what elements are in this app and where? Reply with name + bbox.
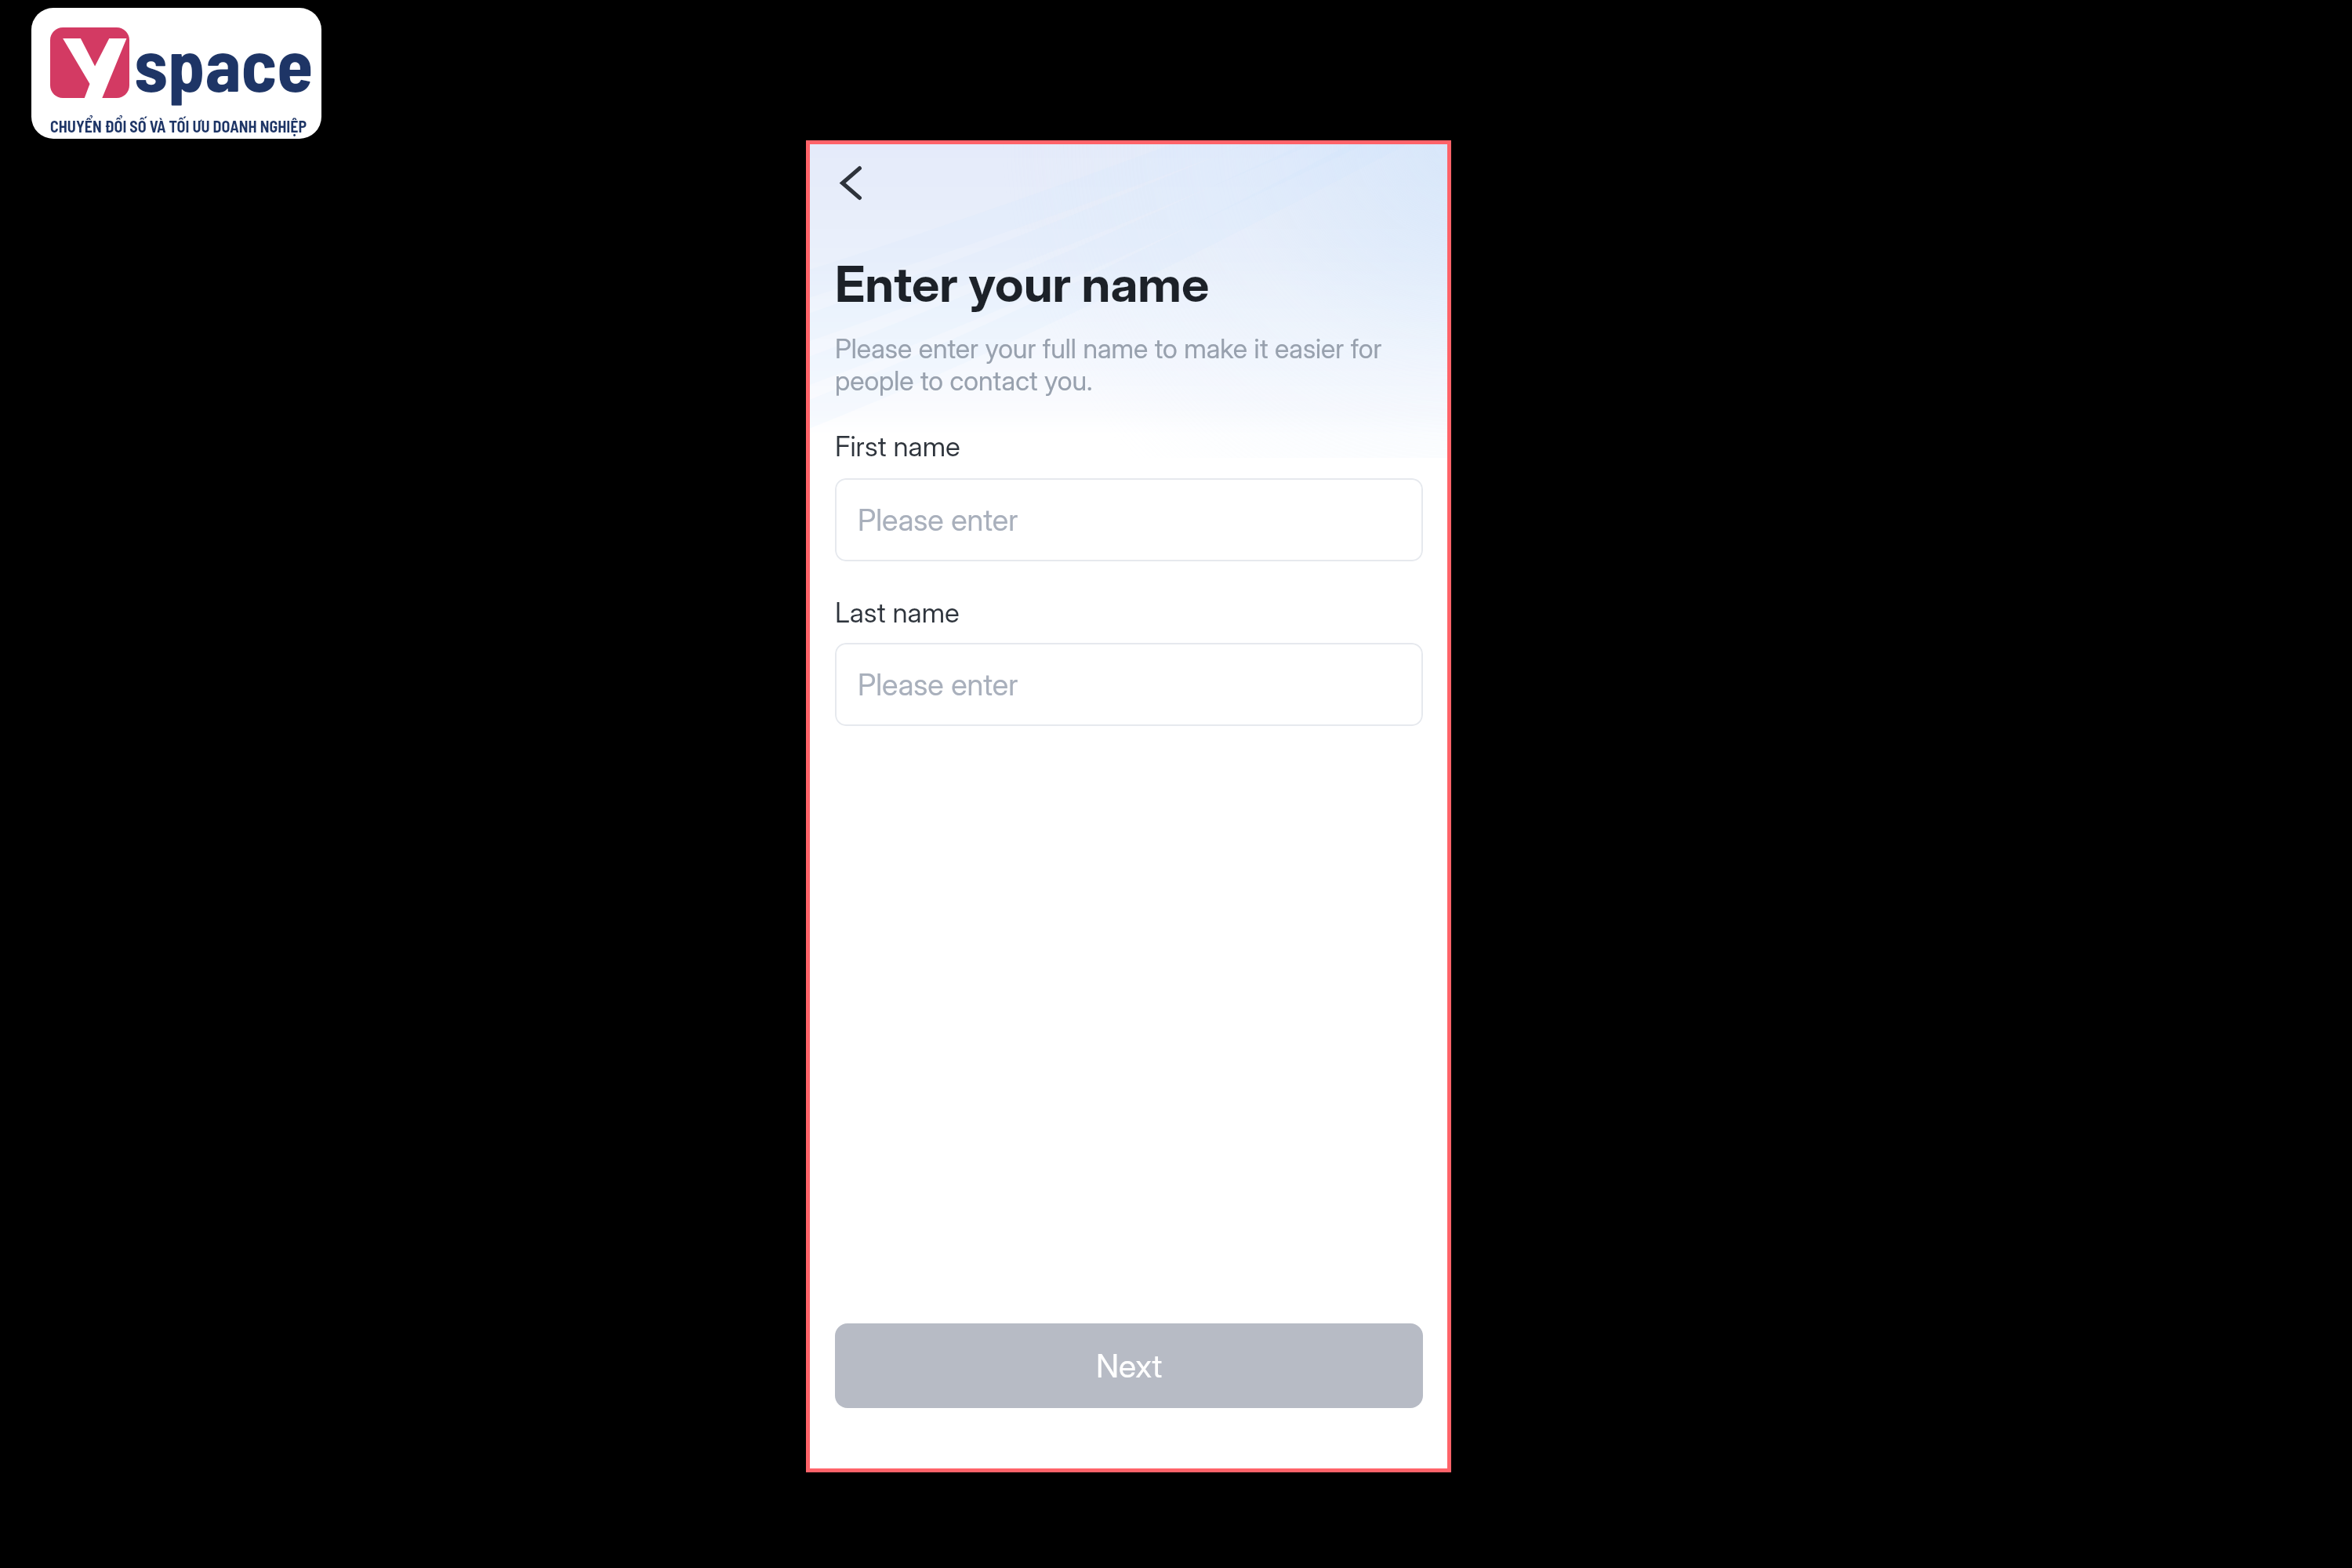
button[interactable]: Please enter — [835, 643, 1423, 726]
staticText: Last name — [835, 597, 960, 629]
staticText: Next — [1096, 1346, 1163, 1385]
staticText: Please enter your full name to make it e… — [835, 332, 1382, 397]
button[interactable]: Next — [835, 1323, 1423, 1408]
button[interactable]: Back — [821, 153, 880, 212]
staticText: First name — [835, 431, 960, 463]
button[interactable]: Please enter — [835, 478, 1423, 561]
staticText: CHUYỂN ĐỔI SỐ VÀ TỐI ƯU DOANH NGHIỆP — [50, 117, 307, 136]
staticText: Please enter — [858, 502, 1018, 538]
staticText: Please enter — [858, 666, 1018, 702]
staticText: space — [134, 29, 314, 104]
staticText: Enter your name — [835, 260, 1210, 313]
